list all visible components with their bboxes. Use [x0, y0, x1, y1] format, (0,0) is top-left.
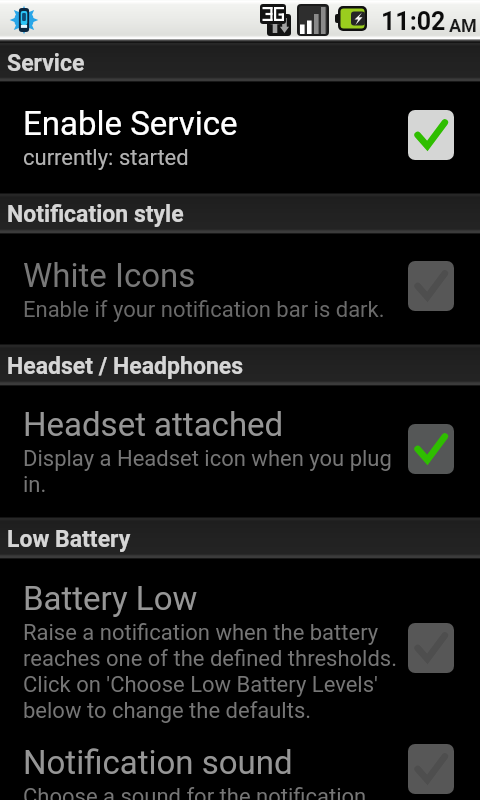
staticText: Service — [7, 50, 85, 77]
staticText: Click on 'Choose Low Battery Levels' — [23, 672, 378, 698]
button[interactable]: Headset attached — [0, 386, 480, 517]
button[interactable]: Toggle setting — [408, 110, 454, 160]
staticText: Enable Service — [23, 104, 238, 143]
staticText: Notification sound — [23, 743, 293, 782]
button[interactable]: Toggle setting — [408, 424, 454, 474]
staticText: Low Battery — [7, 526, 131, 553]
other: App notification — [7, 2, 41, 38]
button[interactable]: Toggle setting — [408, 261, 454, 311]
staticText: Headset attached — [23, 405, 284, 444]
button[interactable]: Battery Low — [0, 559, 480, 743]
staticText: reaches one of the defined thresholds. — [23, 646, 398, 672]
button[interactable]: Toggle setting — [408, 623, 454, 673]
button[interactable]: Enable Service — [0, 82, 480, 193]
staticText: Choose a sound for the notification. — [23, 784, 372, 800]
staticText: Headset / Headphones — [7, 353, 244, 380]
staticText: below to change the defaults. — [23, 698, 312, 724]
staticText: Enable if your notification bar is dark. — [23, 297, 385, 323]
staticText: in. — [23, 472, 47, 498]
button[interactable]: Notification sound — [0, 743, 480, 800]
staticText: currently: started — [23, 145, 189, 171]
staticText: Raise a notification when the battery — [23, 620, 379, 646]
staticText: Notification style — [7, 201, 184, 228]
button[interactable]: White Icons — [0, 234, 480, 344]
staticText: Display a Headset icon when you plug — [23, 446, 392, 472]
button[interactable]: Toggle setting — [408, 744, 454, 794]
staticText: 11:02 — [381, 7, 446, 36]
staticText: AM — [449, 15, 477, 36]
staticText: Battery Low — [23, 579, 198, 618]
staticText: White Icons — [23, 256, 196, 295]
